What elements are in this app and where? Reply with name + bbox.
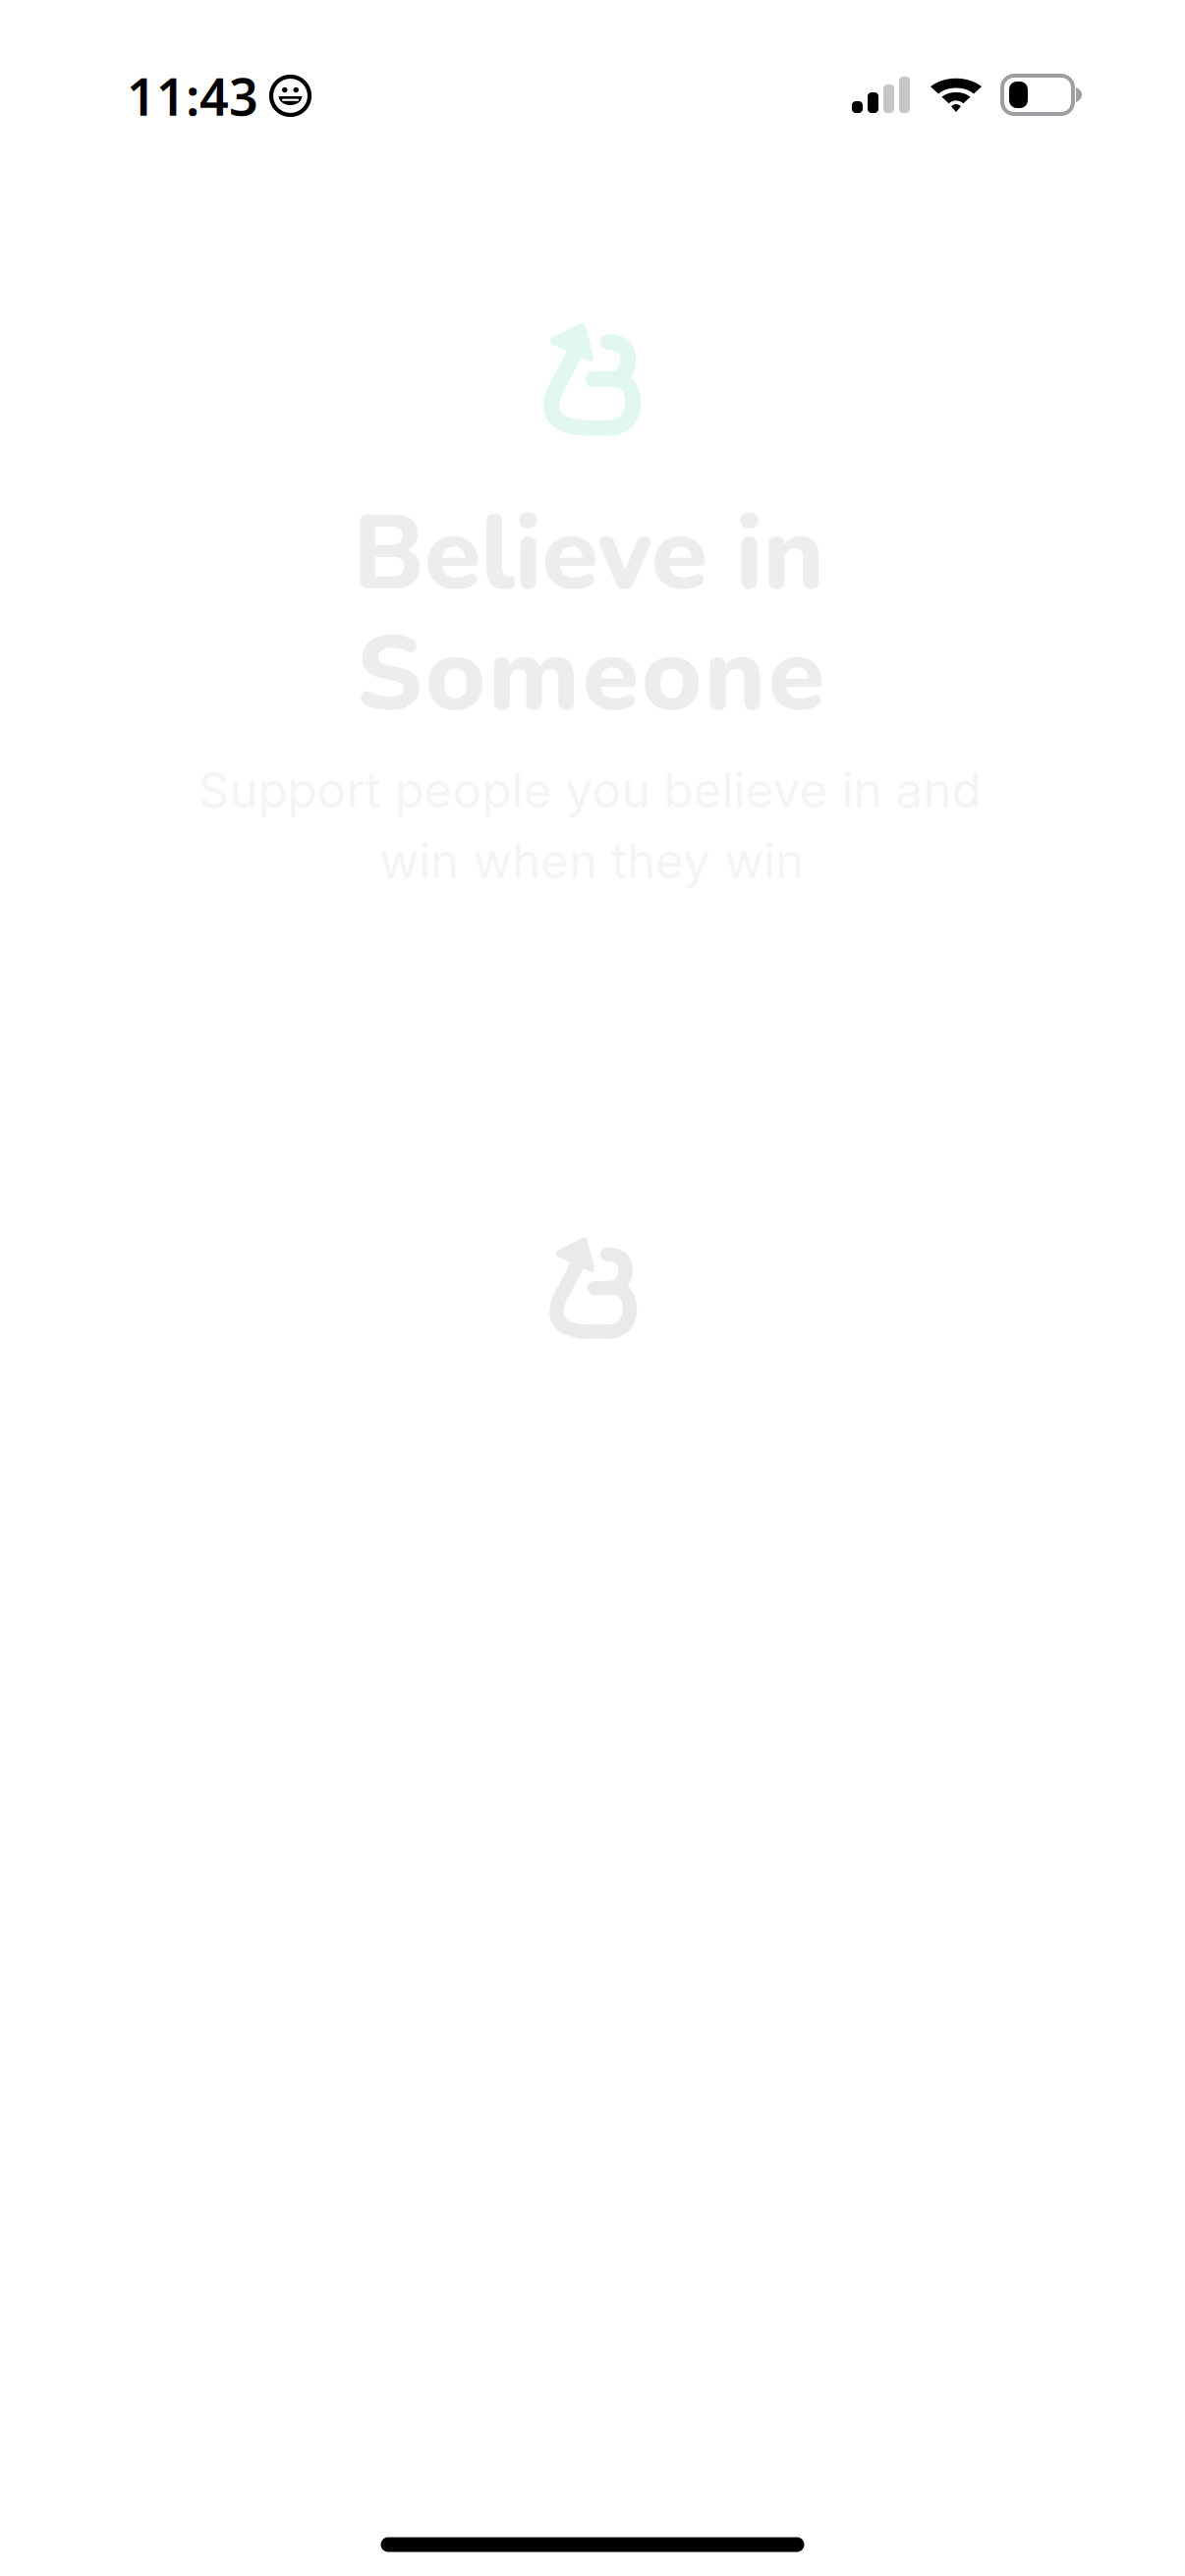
staticText: win when they win — [379, 831, 804, 890]
staticText: Support people you believe in and — [198, 761, 981, 819]
staticText: Someone — [356, 604, 825, 746]
staticText: 11:43 — [127, 62, 258, 130]
staticText: Believe in — [353, 484, 825, 625]
